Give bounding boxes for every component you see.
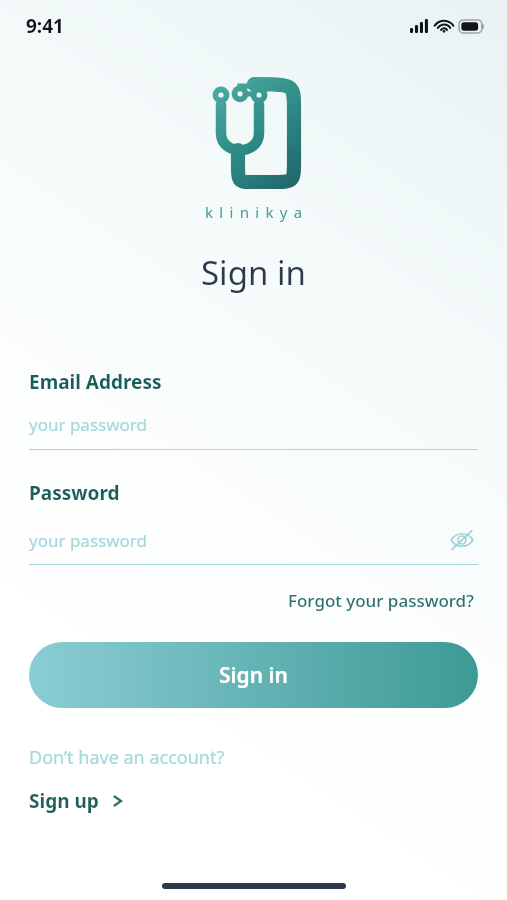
button[interactable]: Show password	[446, 524, 478, 556]
staticText: Sign in	[201, 250, 306, 295]
button[interactable]: Forgot your password?	[284, 585, 478, 616]
staticText: Password	[29, 480, 120, 506]
staticText: Sign in	[219, 661, 288, 690]
staticText: Don’t have an account?	[29, 745, 225, 770]
staticText: Sign up	[29, 788, 99, 814]
staticText: Email Address	[29, 369, 162, 395]
staticText: k l i n i k y a	[205, 202, 304, 222]
staticText: your password	[29, 529, 446, 552]
button[interactable]: Sign in	[29, 642, 478, 708]
staticText: Forgot your password?	[288, 589, 474, 612]
staticText: your password	[29, 413, 147, 436]
button[interactable]: Sign up	[29, 788, 125, 814]
staticText: 9:41	[26, 13, 64, 39]
